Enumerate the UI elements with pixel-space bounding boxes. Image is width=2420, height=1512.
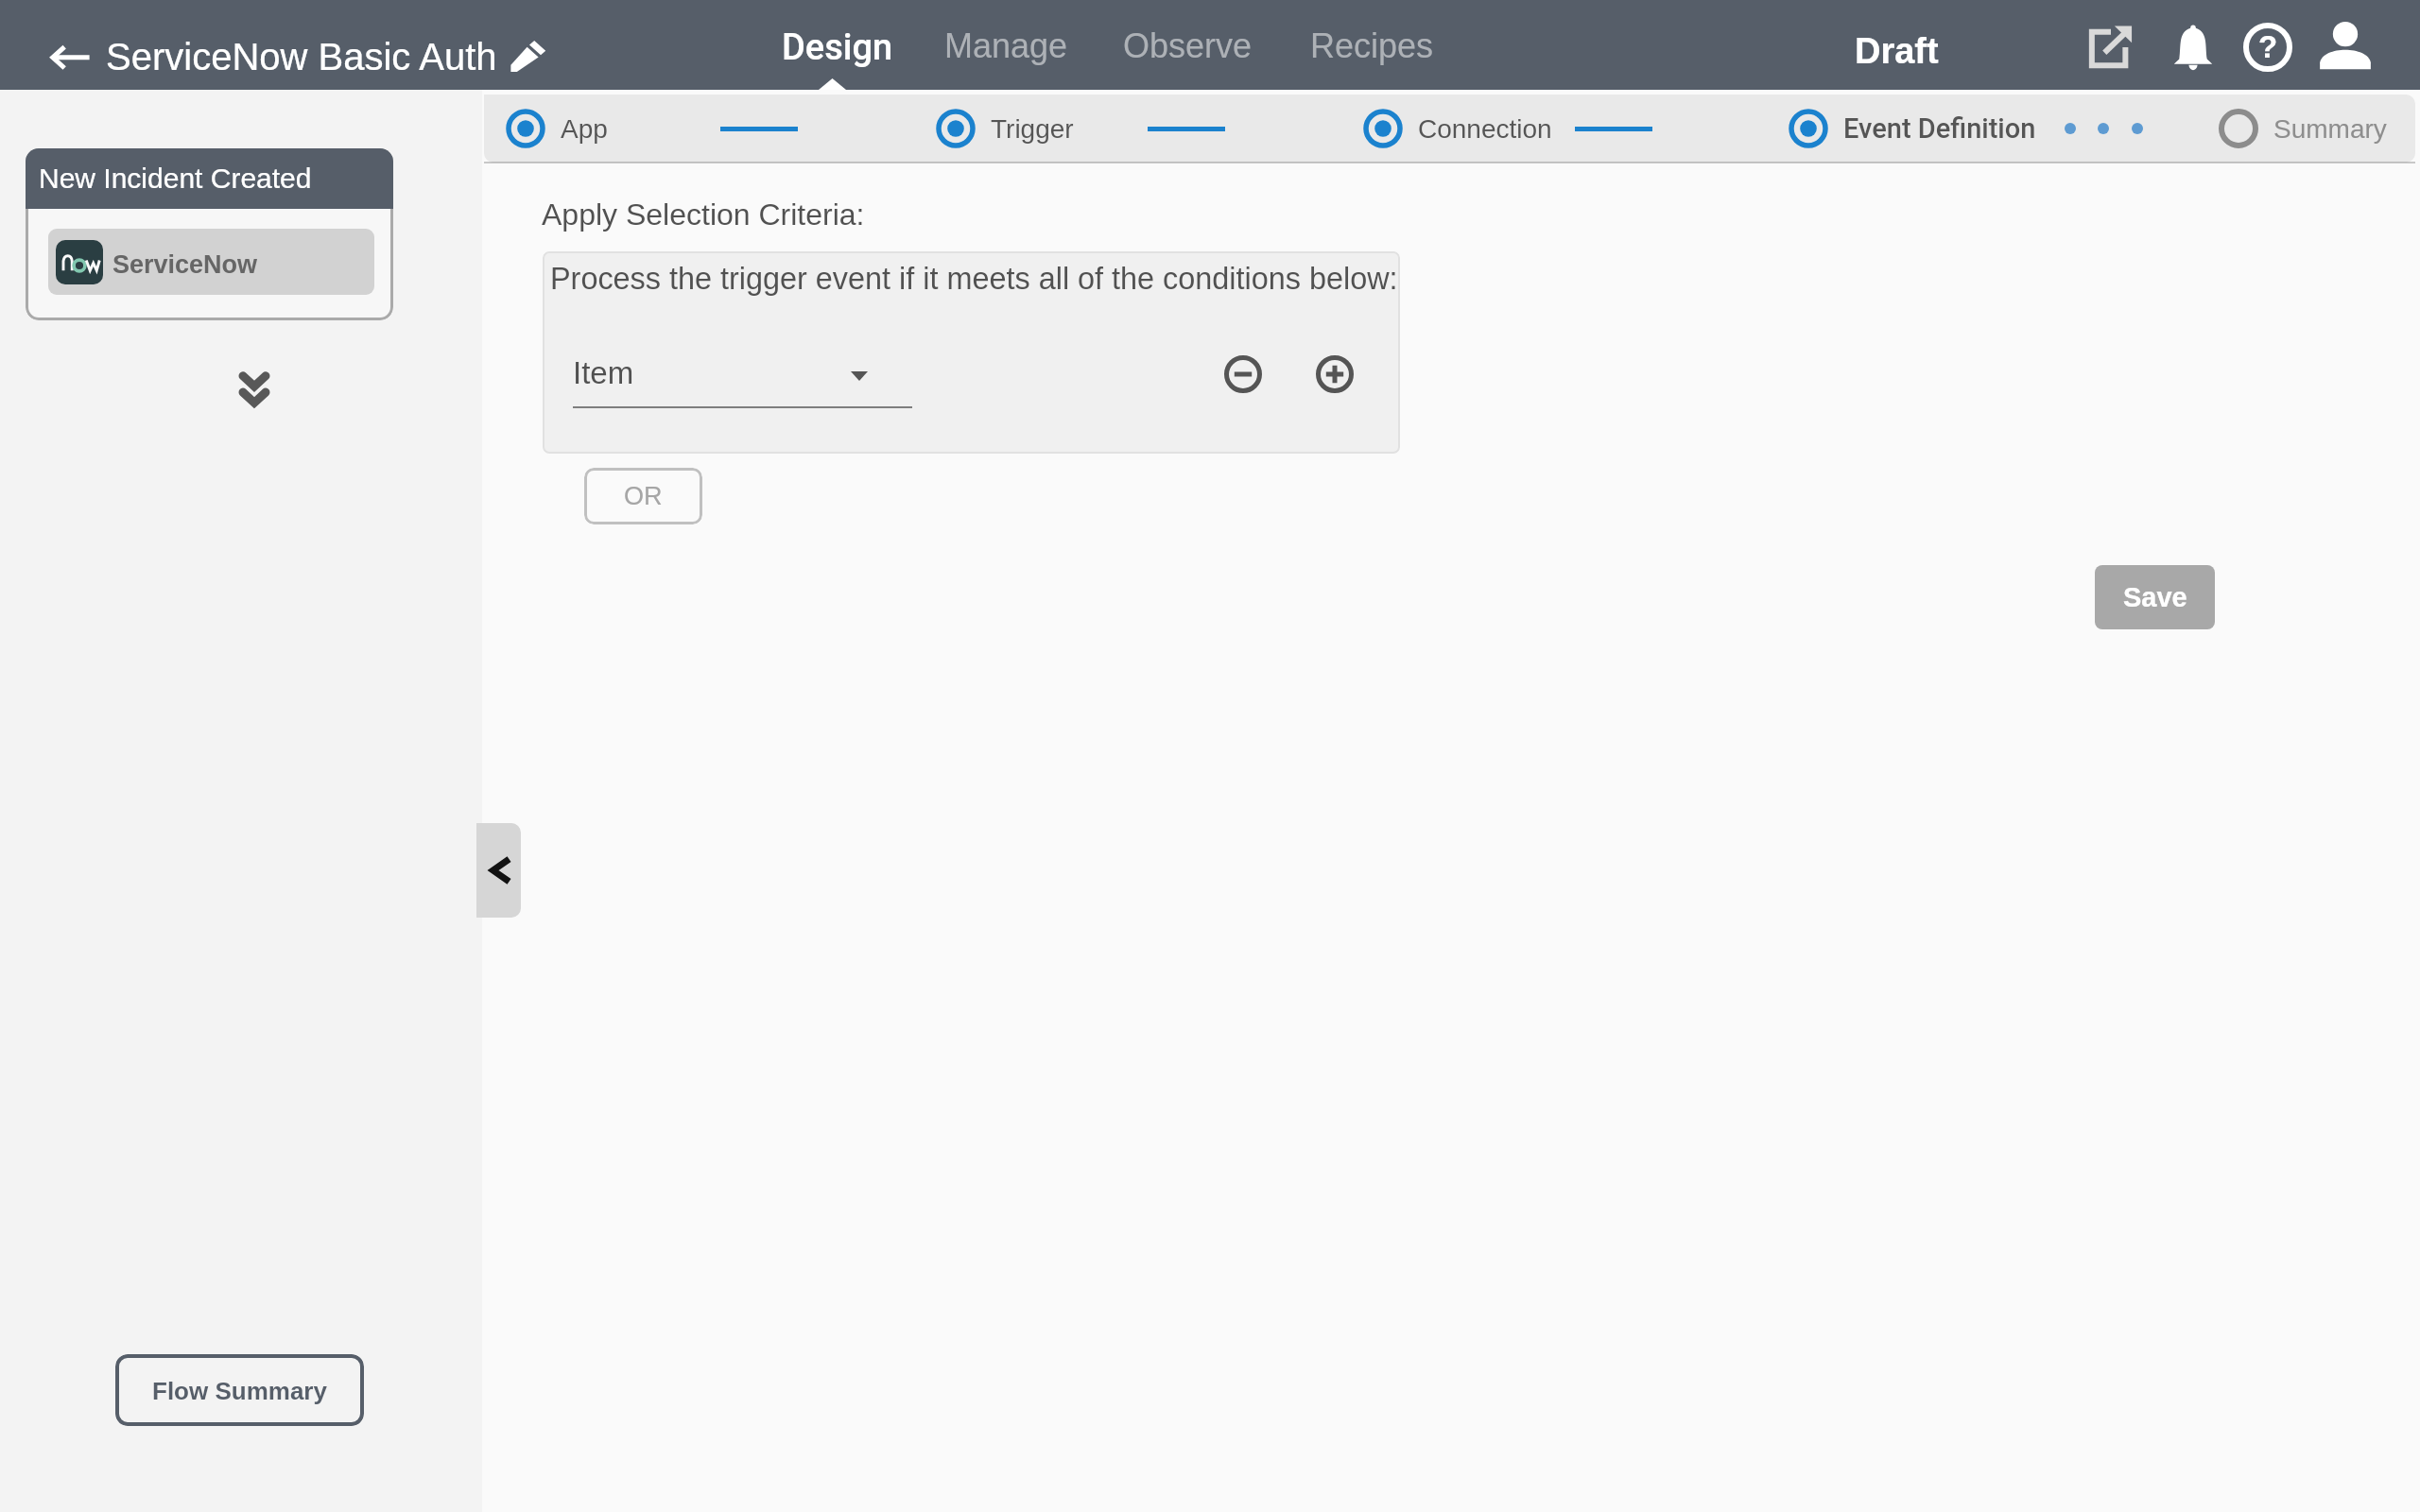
staticText: App <box>561 114 608 144</box>
button[interactable]: Back <box>52 38 90 76</box>
staticText: ? <box>2258 29 2278 64</box>
button[interactable]: App <box>506 109 608 148</box>
staticText: New Incident Created <box>39 163 312 195</box>
button[interactable]: Edit name <box>508 33 551 77</box>
button[interactable]: Flow Summary <box>115 1354 364 1426</box>
button[interactable]: Observe <box>1119 17 1256 74</box>
staticText: Observe <box>1123 26 1253 64</box>
button[interactable]: Notifications <box>2162 16 2224 78</box>
staticText: Item <box>573 355 634 390</box>
staticText: Process the trigger event if it meets al… <box>550 262 1400 296</box>
button[interactable]: Collapse panel <box>476 823 521 918</box>
button[interactable]: Summary <box>2219 109 2387 148</box>
staticText: Draft <box>1855 31 1939 71</box>
button[interactable]: Design <box>778 17 897 78</box>
staticText: Event Definition <box>1843 112 2036 145</box>
button[interactable]: New Incident Created <box>26 148 393 320</box>
button[interactable]: Remove condition <box>1215 346 1271 403</box>
button[interactable]: Help <box>2237 16 2299 78</box>
button[interactable]: Recipes <box>1306 17 1438 74</box>
staticText: ServiceNow Basic Auth <box>106 36 497 78</box>
staticText: Connection <box>1418 114 1552 144</box>
button[interactable]: Save <box>2095 565 2215 629</box>
button[interactable]: Manage <box>941 17 1072 74</box>
staticText: Design <box>782 26 893 69</box>
button[interactable]: Add condition <box>1306 346 1363 403</box>
staticText: Summary <box>2273 114 2387 144</box>
staticText: Flow Summary <box>152 1377 327 1404</box>
button[interactable]: Account <box>2314 16 2377 78</box>
button[interactable]: Open in new window <box>2080 16 2142 78</box>
staticText: OR <box>624 482 663 510</box>
button[interactable]: Event Definition <box>1789 109 2036 148</box>
staticText: Recipes <box>1310 26 1434 64</box>
button[interactable]: Connection <box>1363 109 1552 148</box>
staticText: Manage <box>944 26 1068 64</box>
staticText: Trigger <box>991 114 1074 144</box>
button[interactable]: OR <box>584 468 702 524</box>
staticText: Save <box>2123 582 2187 612</box>
button[interactable]: Item <box>573 342 912 410</box>
staticText: Apply Selection Criteria: <box>542 198 865 232</box>
button[interactable]: Add step <box>240 372 268 407</box>
button[interactable]: Trigger <box>936 109 1074 148</box>
staticText: ServiceNow <box>112 250 258 279</box>
